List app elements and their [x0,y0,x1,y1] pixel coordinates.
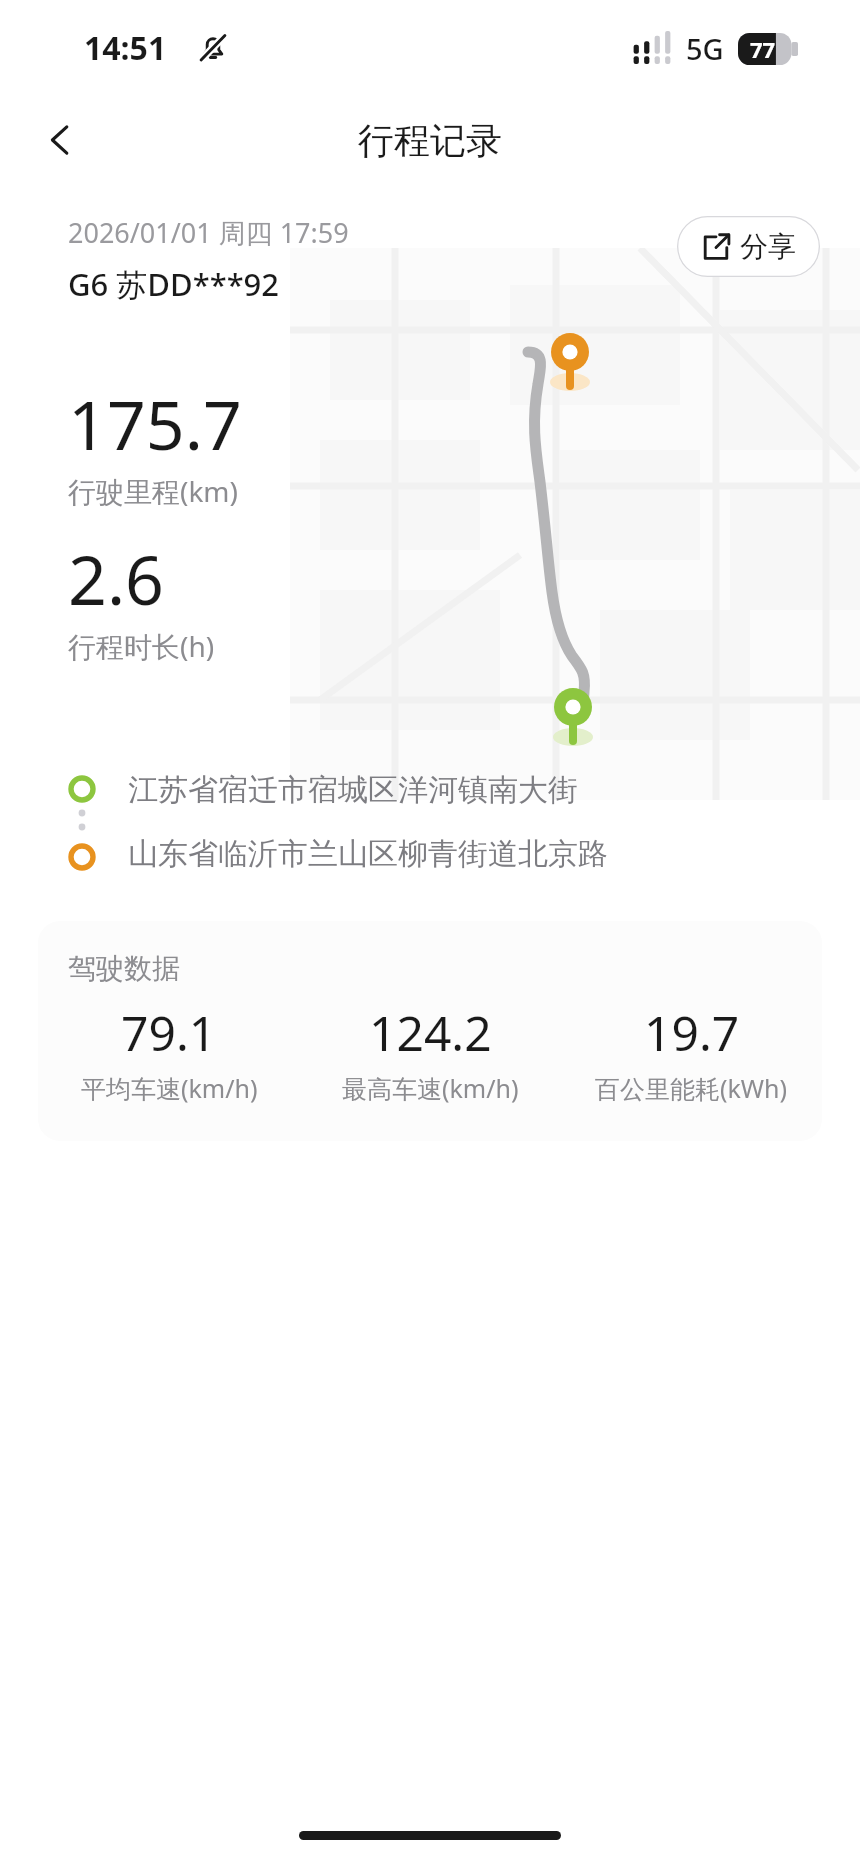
staticText: 175.7 [68,377,242,470]
staticText: 江苏省宿迁市宿城区洋河镇南大街 [128,771,578,809]
staticText: 分享 [740,229,796,264]
staticText: 行程记录 [358,118,502,163]
staticText: 77 [750,34,776,64]
staticText: 124.2 [369,1000,492,1065]
button[interactable]: Back [32,110,92,170]
staticText: 2.6 [68,532,165,625]
staticText: 百公里能耗(kWh) [595,1071,788,1105]
staticText: 14:51 [84,26,167,70]
staticText: 79.1 [121,1000,217,1065]
button[interactable]: 分享 [677,216,820,277]
staticText: 行驶里程(km) [68,472,238,510]
staticText: 2026/01/01 周四 17:59 [68,214,349,251]
staticText: 19.7 [644,1000,740,1065]
button[interactable]: 驾驶数据 [38,921,822,1141]
staticText: 行程时长(h) [68,627,215,665]
staticText: 5G [686,29,724,68]
staticText: G6 苏DD***92 [68,263,280,305]
staticText: 平均车速(km/h) [81,1071,258,1105]
staticText: 最高车速(km/h) [342,1071,519,1105]
staticText: 驾驶数据 [68,951,180,986]
staticText: 山东省临沂市兰山区柳青街道北京路 [128,835,608,873]
